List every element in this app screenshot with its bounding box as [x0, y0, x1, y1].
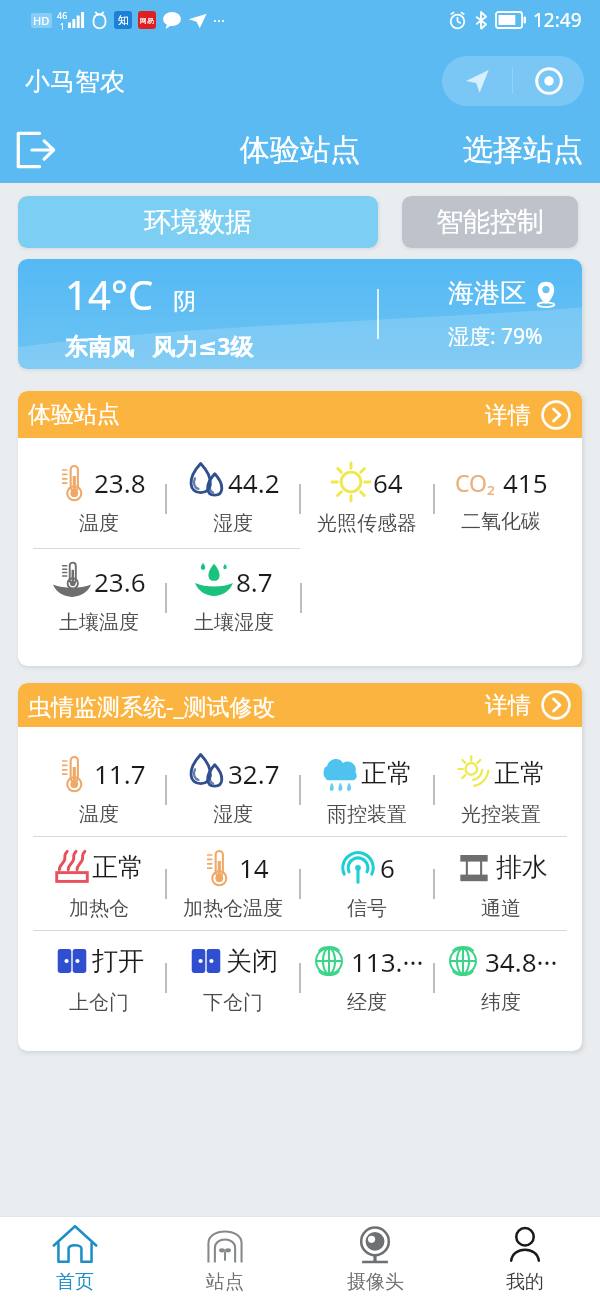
staticText: 详情	[485, 401, 531, 430]
button[interactable]: 14°C	[18, 259, 582, 369]
staticText: 排水	[496, 851, 548, 884]
staticText: 温度	[79, 802, 119, 827]
button[interactable]: 正常	[301, 743, 433, 836]
button[interactable]: 34.8···	[435, 931, 567, 1024]
staticText: 湿度	[213, 802, 253, 827]
button[interactable]: 选择站点	[455, 123, 591, 177]
button[interactable]: 摄像头	[300, 1217, 450, 1300]
button[interactable]: 环境数据	[18, 196, 378, 248]
staticText: 113.···	[351, 944, 424, 979]
staticText: 湿度: 79%	[448, 322, 543, 351]
staticText: 44.2	[228, 465, 280, 500]
button[interactable]: 打开	[33, 931, 165, 1024]
button[interactable]: Locate	[513, 56, 584, 106]
staticText: 正常	[361, 757, 413, 790]
button[interactable]: 我的	[450, 1217, 600, 1300]
staticText: 选择站点	[463, 131, 583, 169]
staticText: 雨控装置	[327, 802, 407, 827]
button[interactable]: 体验站点	[232, 123, 368, 177]
staticText: 正常	[494, 757, 546, 790]
button[interactable]: 113.···	[301, 931, 433, 1024]
button[interactable]: 14	[167, 837, 299, 930]
staticText: 温度	[79, 511, 119, 536]
staticText: 阴	[173, 287, 196, 316]
staticText: 光照传感器	[317, 511, 417, 536]
staticText: 土壤湿度	[194, 610, 274, 635]
button[interactable]: 首页	[0, 1217, 150, 1300]
staticText: 土壤温度	[59, 610, 139, 635]
staticText: 智能控制	[436, 205, 544, 239]
staticText: 环境数据	[144, 205, 252, 239]
button[interactable]: 64	[301, 450, 433, 548]
staticText: 34.8···	[485, 944, 558, 979]
button[interactable]: CO₂	[435, 450, 567, 548]
staticText: 64	[373, 465, 403, 500]
button[interactable]: 6	[301, 837, 433, 930]
staticText: 下仓门	[203, 990, 263, 1015]
button[interactable]: 23.6	[33, 549, 165, 647]
staticText: 体验站点	[28, 400, 120, 429]
staticText: 12:49	[533, 7, 582, 33]
staticText: 23.6	[94, 564, 146, 599]
staticText: 14°C	[65, 267, 154, 321]
button[interactable]: 8.7	[167, 549, 300, 647]
staticText: 23.8	[94, 465, 146, 500]
staticText: 东南风 风力≤3级	[65, 330, 254, 361]
staticText: 虫情监测系统-_测试修改	[28, 690, 276, 721]
button[interactable]: 11.7	[33, 743, 165, 836]
staticText: 纬度	[481, 990, 521, 1015]
staticText: ···	[213, 10, 226, 30]
staticText: 415	[503, 465, 548, 500]
button[interactable]: 详情	[483, 396, 573, 434]
button[interactable]: 23.8	[33, 450, 165, 548]
staticText: 打开	[92, 945, 144, 978]
button[interactable]: 关闭	[167, 931, 299, 1024]
staticText: 摄像头	[347, 1270, 404, 1294]
staticText: 首页	[56, 1270, 94, 1294]
staticText: 经度	[347, 990, 387, 1015]
staticText: 46	[57, 9, 68, 21]
staticText: 详情	[485, 691, 531, 720]
staticText: 11.7	[94, 756, 146, 791]
staticText: 小马智农	[25, 66, 125, 97]
staticText: HD	[33, 13, 50, 28]
button[interactable]: 详情	[483, 686, 573, 724]
staticText: 我的	[506, 1270, 544, 1294]
staticText: 加热仓温度	[183, 896, 283, 921]
button[interactable]: 站点	[150, 1217, 300, 1300]
staticText: 通道	[481, 896, 521, 921]
staticText: 正常	[92, 851, 144, 884]
staticText: 海港区	[448, 277, 526, 310]
button[interactable]: Navigate	[442, 56, 512, 106]
staticText: 体验站点	[240, 131, 360, 169]
staticText: 1	[60, 21, 65, 32]
staticText: 上仓门	[69, 990, 129, 1015]
staticText: 32.7	[228, 756, 280, 791]
button[interactable]: 排水	[435, 837, 567, 930]
staticText: 知	[118, 13, 129, 27]
button[interactable]: 32.7	[167, 743, 299, 836]
button[interactable]: 智能控制	[402, 196, 578, 248]
button[interactable]: Logout	[8, 123, 62, 177]
button[interactable]: 正常	[435, 743, 567, 836]
staticText: 光控装置	[461, 802, 541, 827]
staticText: 加热仓	[69, 896, 129, 921]
staticText: 站点	[206, 1270, 244, 1294]
button[interactable]: 44.2	[167, 450, 299, 548]
button[interactable]: 正常	[33, 837, 165, 930]
staticText: 关闭	[226, 945, 278, 978]
staticText: 6	[380, 850, 395, 885]
staticText: 二氧化碳	[461, 509, 541, 534]
staticText: 湿度	[213, 511, 253, 536]
staticText: 信号	[347, 896, 387, 921]
staticText: 网易	[140, 16, 154, 25]
staticText: 14	[239, 850, 269, 885]
staticText: 8.7	[236, 564, 273, 599]
staticText: CO₂	[455, 467, 496, 498]
